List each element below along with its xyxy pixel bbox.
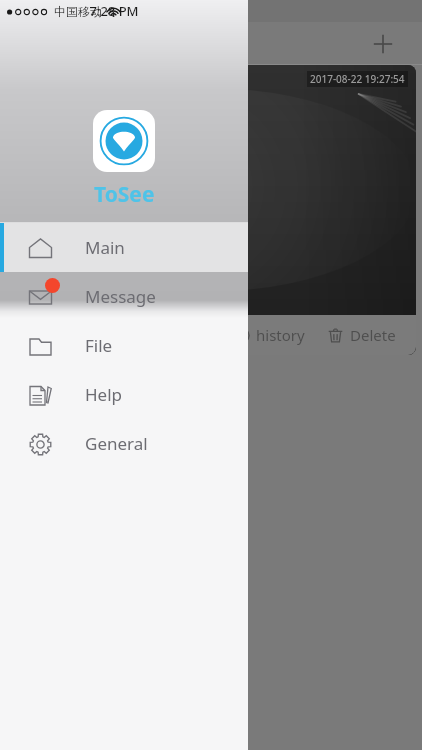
button[interactable] <box>93 110 155 172</box>
staticText: General <box>85 432 148 455</box>
staticText: ToSee <box>94 180 155 209</box>
staticText: Main <box>85 236 125 259</box>
button[interactable]: Add <box>366 27 400 61</box>
button[interactable]: Message <box>0 272 248 321</box>
button[interactable]: Main <box>0 223 248 272</box>
button[interactable]: File <box>0 321 248 370</box>
staticText: 中国移动 <box>54 4 102 19</box>
staticText: 7:28 PM <box>89 2 139 20</box>
staticText: Help <box>85 383 123 406</box>
staticText: Message <box>85 285 156 308</box>
button[interactable]: Help <box>0 370 248 419</box>
staticText: File <box>85 334 113 357</box>
staticText: Delete <box>350 325 396 345</box>
button[interactable]: Delete <box>323 319 400 351</box>
button[interactable]: history <box>229 319 309 351</box>
staticText: history <box>256 325 305 345</box>
button[interactable]: 2017-08-22 19:27:54 <box>6 65 416 355</box>
button[interactable]: General <box>0 419 248 468</box>
staticText: 2017-08-22 19:27:54 <box>310 72 405 86</box>
